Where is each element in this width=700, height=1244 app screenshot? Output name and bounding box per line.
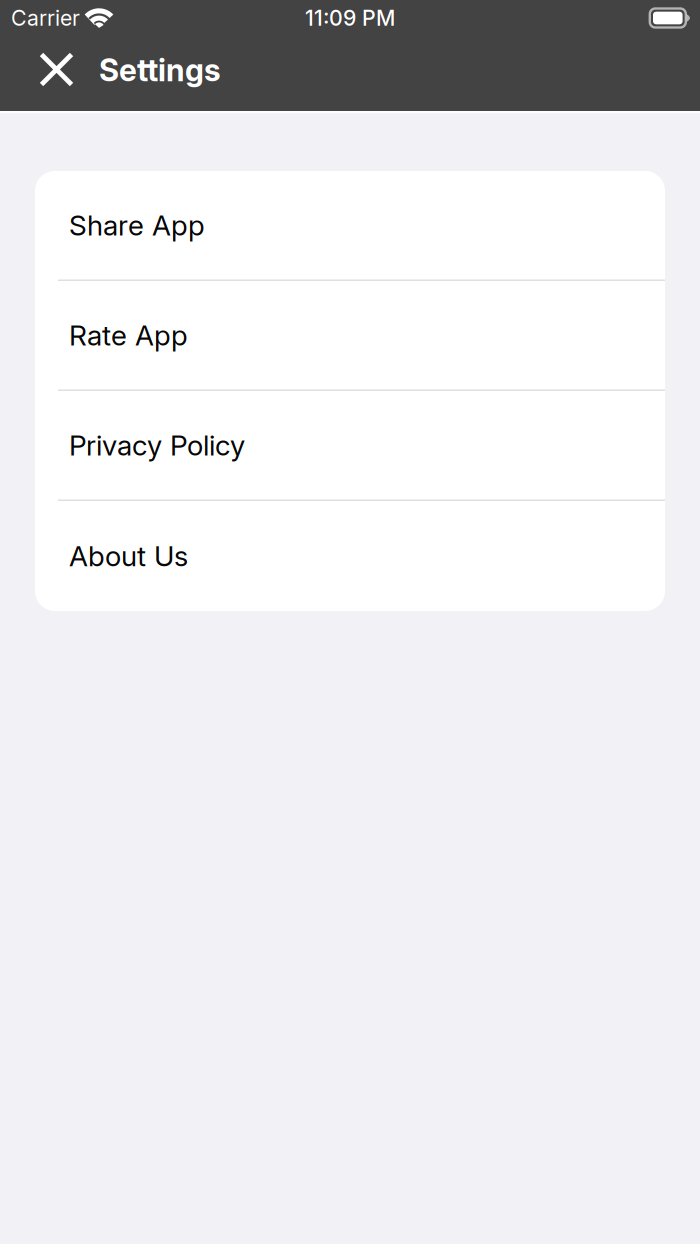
staticText: Rate App (69, 318, 188, 352)
button[interactable]: Rate App (35, 281, 665, 391)
staticText: Privacy Policy (69, 428, 245, 462)
button[interactable]: Privacy Policy (35, 391, 665, 501)
staticText: Carrier (11, 5, 80, 31)
staticText: About Us (69, 539, 188, 573)
button[interactable]: Share App (35, 171, 665, 281)
button[interactable]: About Us (35, 501, 665, 611)
staticText: Settings (99, 51, 221, 88)
button[interactable]: Close (0, 40, 99, 107)
staticText: Share App (69, 208, 205, 242)
staticText: 11:09 PM (305, 5, 395, 31)
